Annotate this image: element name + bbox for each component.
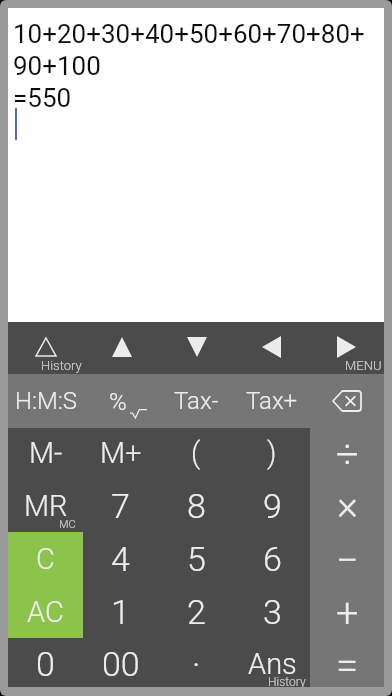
staticText: % bbox=[109, 388, 127, 416]
button[interactable]: Tax- bbox=[159, 374, 234, 428]
button[interactable]: 7 bbox=[83, 479, 158, 532]
button[interactable]: 3 bbox=[234, 585, 310, 638]
button[interactable]: M+ bbox=[83, 428, 158, 479]
staticText: 3 bbox=[263, 592, 282, 632]
button[interactable]: 9 bbox=[234, 479, 310, 532]
staticText: 0 bbox=[36, 644, 55, 684]
button[interactable]: + bbox=[310, 585, 384, 638]
button[interactable]: · bbox=[158, 637, 234, 687]
staticText: = bbox=[336, 642, 359, 687]
button[interactable]: Scroll up bbox=[84, 322, 159, 374]
staticText: 4 bbox=[111, 539, 130, 579]
button[interactable]: 10+20+30+40+50+60+70+80+ 90+100 =550 bbox=[8, 8, 384, 322]
button[interactable]: ( bbox=[158, 428, 234, 479]
staticText: MR bbox=[24, 489, 68, 523]
button[interactable]: Tax+ bbox=[234, 374, 309, 428]
staticText: History bbox=[41, 358, 82, 373]
button[interactable]: % bbox=[84, 374, 159, 428]
staticText: ÷ bbox=[336, 431, 359, 478]
staticText: 00 bbox=[102, 644, 140, 684]
button[interactable]: − bbox=[310, 532, 384, 585]
button[interactable]: Move left bbox=[234, 322, 309, 374]
staticText: 7 bbox=[111, 486, 130, 526]
button[interactable]: 0 bbox=[8, 637, 83, 687]
staticText: 6 bbox=[263, 539, 282, 579]
staticText: + bbox=[336, 590, 359, 637]
staticText: AC bbox=[27, 595, 64, 629]
staticText: 5 bbox=[187, 539, 206, 579]
button[interactable]: 1 bbox=[83, 585, 158, 638]
staticText: 8 bbox=[187, 486, 206, 526]
button[interactable]: AC bbox=[8, 585, 83, 638]
staticText: Tax+ bbox=[246, 387, 298, 415]
staticText: − bbox=[336, 537, 359, 584]
button[interactable]: ) bbox=[234, 428, 310, 479]
button[interactable]: × bbox=[310, 479, 384, 532]
staticText: 9 bbox=[263, 486, 282, 526]
button[interactable]: 5 bbox=[158, 532, 234, 585]
staticText: History bbox=[268, 675, 306, 687]
staticText: Ans bbox=[248, 647, 297, 681]
button[interactable]: Scroll down bbox=[159, 322, 234, 374]
staticText: 2 bbox=[187, 592, 206, 632]
staticText: M- bbox=[29, 436, 63, 470]
button[interactable]: ÷ bbox=[310, 428, 384, 479]
button[interactable]: M- bbox=[8, 428, 83, 479]
staticText: × bbox=[337, 482, 358, 529]
button[interactable]: 8 bbox=[158, 479, 234, 532]
button[interactable]: MENU bbox=[309, 322, 384, 374]
button[interactable]: 6 bbox=[234, 532, 310, 585]
button[interactable]: = bbox=[310, 637, 384, 687]
button[interactable]: Ans bbox=[234, 637, 310, 687]
staticText: MC bbox=[59, 518, 76, 531]
staticText: · bbox=[192, 644, 201, 684]
staticText: H:M:S bbox=[15, 387, 78, 415]
button[interactable]: C bbox=[8, 532, 83, 585]
staticText: MENU bbox=[345, 358, 382, 373]
staticText: Tax- bbox=[174, 387, 219, 415]
button[interactable]: History bbox=[8, 322, 84, 374]
button[interactable]: 00 bbox=[83, 637, 158, 687]
button[interactable]: Backspace bbox=[309, 374, 384, 428]
staticText: ) bbox=[267, 436, 277, 470]
button[interactable]: 4 bbox=[83, 532, 158, 585]
staticText: ( bbox=[191, 436, 201, 470]
button[interactable]: 2 bbox=[158, 585, 234, 638]
staticText: 10+20+30+40+50+60+70+80+ 90+100 =550 bbox=[13, 19, 365, 113]
staticText: C bbox=[36, 542, 55, 576]
staticText: 1 bbox=[111, 592, 130, 632]
staticText: M+ bbox=[100, 436, 142, 470]
button[interactable]: H:M:S bbox=[8, 374, 84, 428]
button[interactable]: MR bbox=[8, 479, 83, 532]
